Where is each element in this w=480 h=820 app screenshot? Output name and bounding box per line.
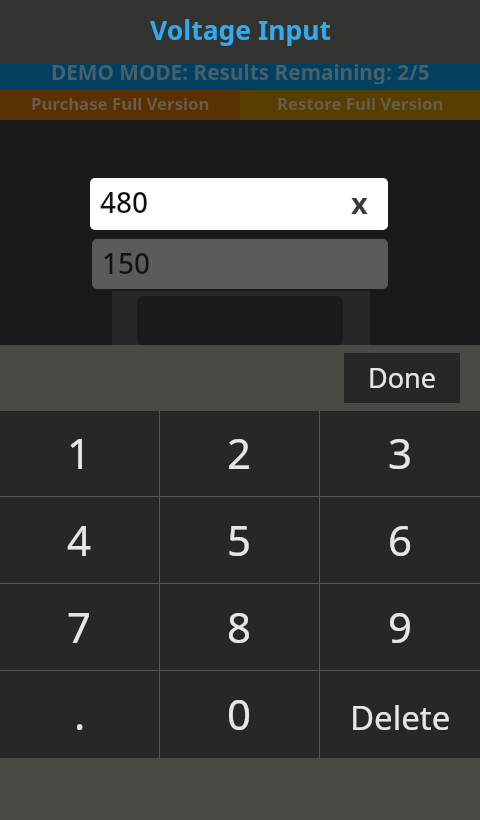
- button[interactable]: 2: [160, 411, 319, 496]
- staticText: Voltage Input: [150, 12, 331, 48]
- button[interactable]: 150: [92, 239, 388, 289]
- button[interactable]: 8: [160, 584, 319, 670]
- staticText: Done: [368, 359, 436, 396]
- staticText: DEMO MODE: Results Remaining: 2/5: [51, 58, 430, 84]
- staticText: 2: [227, 424, 252, 481]
- staticText: 6: [388, 511, 413, 568]
- button[interactable]: .: [0, 671, 159, 758]
- button[interactable]: [112, 291, 370, 345]
- button[interactable]: 7: [0, 584, 159, 670]
- staticText: Delete: [350, 695, 451, 740]
- button[interactable]: Purchase Full Version: [0, 90, 240, 120]
- staticText: 5: [227, 511, 252, 568]
- staticText: 1: [67, 424, 92, 481]
- staticText: x: [351, 183, 368, 215]
- button[interactable]: 0: [160, 671, 319, 758]
- button[interactable]: 5: [160, 497, 319, 583]
- button[interactable]: 1: [0, 411, 159, 496]
- staticText: 3: [388, 424, 413, 481]
- staticText: 480: [100, 183, 149, 221]
- button[interactable]: 6: [320, 497, 480, 583]
- button[interactable]: 3: [320, 411, 480, 496]
- staticText: .: [74, 685, 86, 742]
- button[interactable]: Delete: [320, 671, 480, 758]
- staticText: 4: [67, 511, 92, 568]
- button[interactable]: Done: [344, 353, 460, 403]
- button[interactable]: 4: [0, 497, 159, 583]
- staticText: Restore Full Version: [277, 92, 444, 115]
- staticText: 150: [102, 244, 151, 282]
- staticText: Purchase Full Version: [31, 92, 210, 115]
- button[interactable]: 9: [320, 584, 480, 670]
- button[interactable]: Restore Full Version: [240, 90, 480, 120]
- staticText: 0: [227, 685, 252, 742]
- staticText: 8: [227, 598, 252, 655]
- staticText: 7: [67, 598, 92, 655]
- button[interactable]: Clear: [342, 188, 374, 220]
- staticText: 9: [388, 598, 413, 655]
- button[interactable]: 480: [90, 178, 388, 230]
